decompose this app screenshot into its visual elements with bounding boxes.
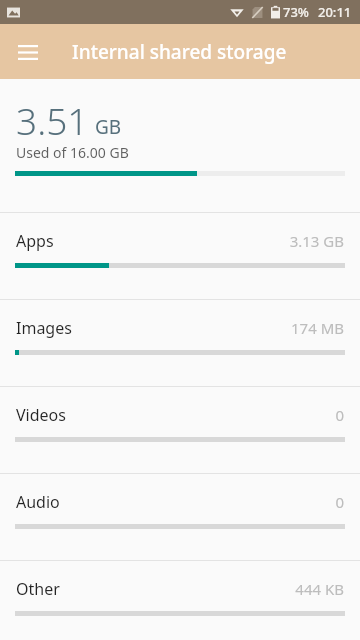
button[interactable]: Videos (0, 386, 360, 473)
button[interactable]: Audio (0, 473, 360, 560)
staticText: 444 KB (295, 579, 344, 599)
staticText: GB (95, 114, 122, 140)
staticText: 174 MB (291, 318, 344, 338)
button[interactable]: Images (0, 299, 360, 386)
staticText: Videos (16, 404, 335, 426)
staticText: Other (16, 578, 295, 600)
staticText: 3.13 GB (289, 231, 344, 251)
staticText: 73% (283, 3, 309, 21)
staticText: 0 (335, 492, 344, 512)
staticText: 3.51 (16, 95, 89, 145)
staticText: Audio (16, 491, 335, 513)
staticText: Images (16, 317, 291, 339)
staticText: 20:11 (318, 3, 352, 21)
staticText: Apps (16, 230, 289, 252)
staticText: Internal shared storage (72, 39, 287, 65)
button[interactable]: Open navigation menu (4, 28, 52, 76)
button[interactable]: Apps (0, 212, 360, 299)
staticText: Used of 16.00 GB (16, 143, 129, 162)
button[interactable]: Other (0, 560, 360, 640)
staticText: 0 (335, 405, 344, 425)
